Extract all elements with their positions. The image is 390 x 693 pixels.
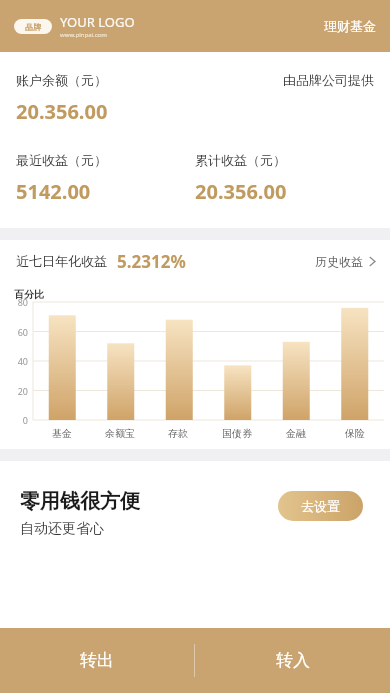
staticText: 20 [8,385,28,397]
staticText: 去设置 [301,498,340,514]
staticText: 存款 [168,427,188,440]
staticText: 历史收益 [315,254,363,269]
staticText: 由品牌公司提供 [283,72,374,88]
button[interactable]: 历史收益 [315,254,376,269]
staticText: 80 [8,296,28,308]
staticText: 转出 [80,650,114,671]
button[interactable]: 转出 [0,628,194,693]
staticText: 最近收益（元） [16,152,107,168]
staticText: www.pinpai.com [60,31,107,39]
staticText: 5142.00 [16,178,91,205]
staticText: 0 [8,414,28,426]
staticText: 金融 [286,427,306,440]
button[interactable]: 转入 [195,628,390,693]
staticText: YOUR LOGO [60,13,135,31]
staticText: 60 [8,326,28,338]
staticText: 百分比 [14,288,44,301]
button[interactable]: 理财基金 [324,18,376,34]
staticText: 自动还更省心 [20,520,104,538]
staticText: 余额宝 [105,427,135,440]
button[interactable]: 去设置 [278,491,363,521]
staticText: 20.356.00 [16,98,108,125]
staticText: 40 [8,355,28,367]
staticText: 保险 [345,427,365,440]
staticText: 转入 [276,650,310,671]
staticText: 5.2312% [117,250,186,273]
staticText: 累计收益（元） [195,152,286,168]
button[interactable]: 品牌 [14,13,135,39]
staticText: 理财基金 [324,18,376,34]
staticText: 20.356.00 [195,178,287,205]
staticText: 零用钱很方便 [20,489,140,514]
staticText: 品牌 [25,22,41,32]
staticText: 基金 [52,427,72,440]
staticText: 账户余额（元） [16,72,107,88]
staticText: 国债券 [222,427,252,440]
staticText: 近七日年化收益 [16,253,107,269]
